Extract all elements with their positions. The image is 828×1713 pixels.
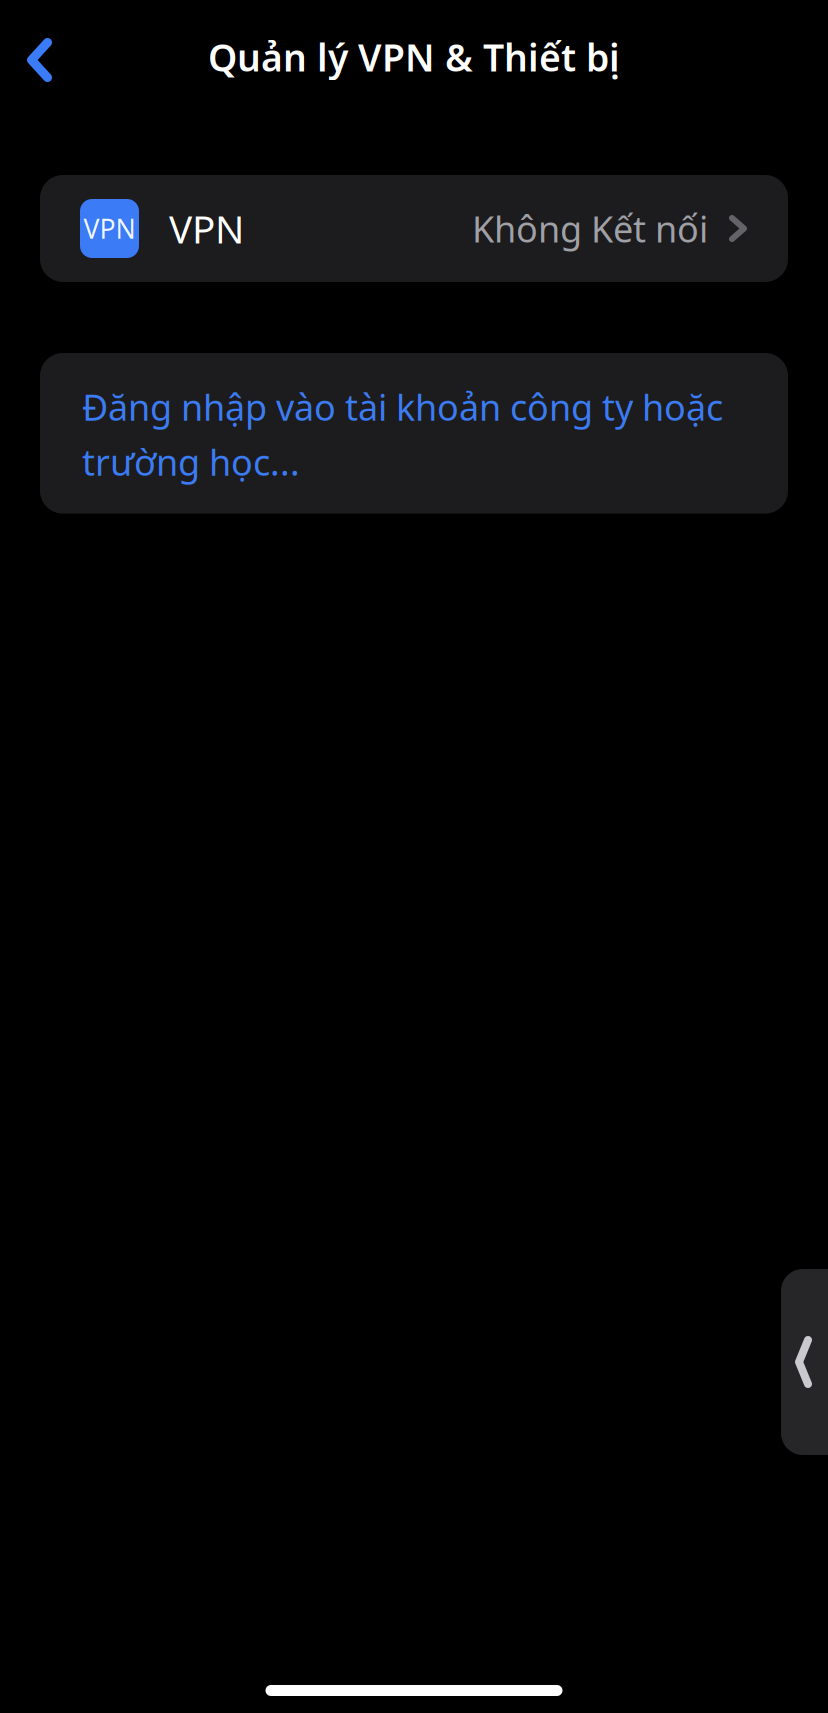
button[interactable]: Đăng nhập vào tài khoản công ty hoặc trư… xyxy=(40,353,788,514)
staticText: Không Kết nối xyxy=(472,205,708,252)
staticText: Quản lý VPN & Thiết bị xyxy=(208,32,620,82)
staticText: Đăng nhập vào tài khoản công ty hoặc trư… xyxy=(82,383,723,486)
staticText: VPN xyxy=(169,203,244,254)
button[interactable]: Back xyxy=(0,12,72,108)
button[interactable]: Back xyxy=(781,1269,828,1455)
staticText: VPN xyxy=(83,211,135,246)
button[interactable]: VPN xyxy=(40,175,788,282)
